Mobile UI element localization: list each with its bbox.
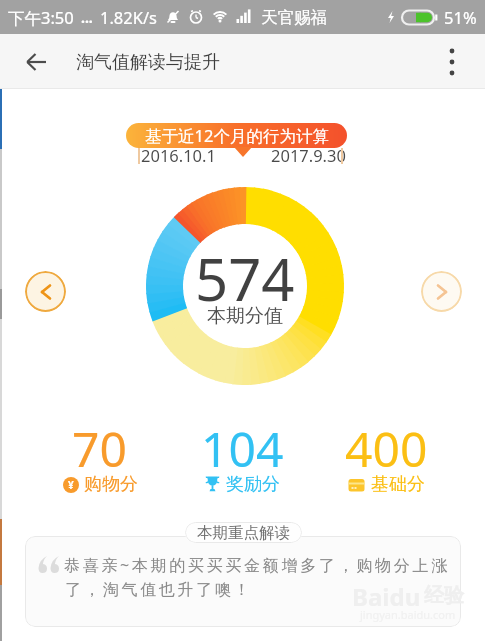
staticText: ¥ <box>68 478 74 492</box>
button[interactable] <box>25 536 461 627</box>
staticText: ... <box>81 8 93 27</box>
staticText: 本期重点解读 <box>197 523 290 543</box>
staticText: 本期分值 <box>207 304 283 328</box>
staticText: 基于近12个月的行为计算 <box>145 124 329 147</box>
staticText: 基础分 <box>371 473 425 496</box>
button[interactable] <box>421 271 462 312</box>
button[interactable] <box>25 271 66 312</box>
staticText: 400 <box>345 416 428 468</box>
staticText: 70 <box>72 416 127 468</box>
staticText: 天官赐福 <box>261 7 327 28</box>
staticText: 奖励分 <box>226 473 280 496</box>
staticText: 下午3:50 <box>8 6 74 29</box>
staticText: 恭喜亲~本期的买买买金额增多了，购物分上涨 <box>64 554 450 576</box>
staticText: 51% <box>444 6 477 28</box>
staticText: 1.82K/s <box>100 6 157 28</box>
staticText: 104 <box>201 416 284 468</box>
staticText: 2017.9.30 <box>271 144 346 166</box>
staticText: 经验 <box>424 583 464 608</box>
staticText: 购物分 <box>84 473 138 496</box>
button[interactable] <box>14 40 58 84</box>
staticText: 淘气值解读与提升 <box>76 51 220 74</box>
staticText: 2016.10.1 <box>141 144 216 166</box>
staticText: 了，淘气值也升了噢！ <box>64 580 251 600</box>
staticText: Baidu <box>352 580 421 613</box>
staticText: jingyan.baidu.com <box>360 607 456 622</box>
button[interactable] <box>430 40 474 84</box>
staticText: 574 <box>195 239 295 309</box>
